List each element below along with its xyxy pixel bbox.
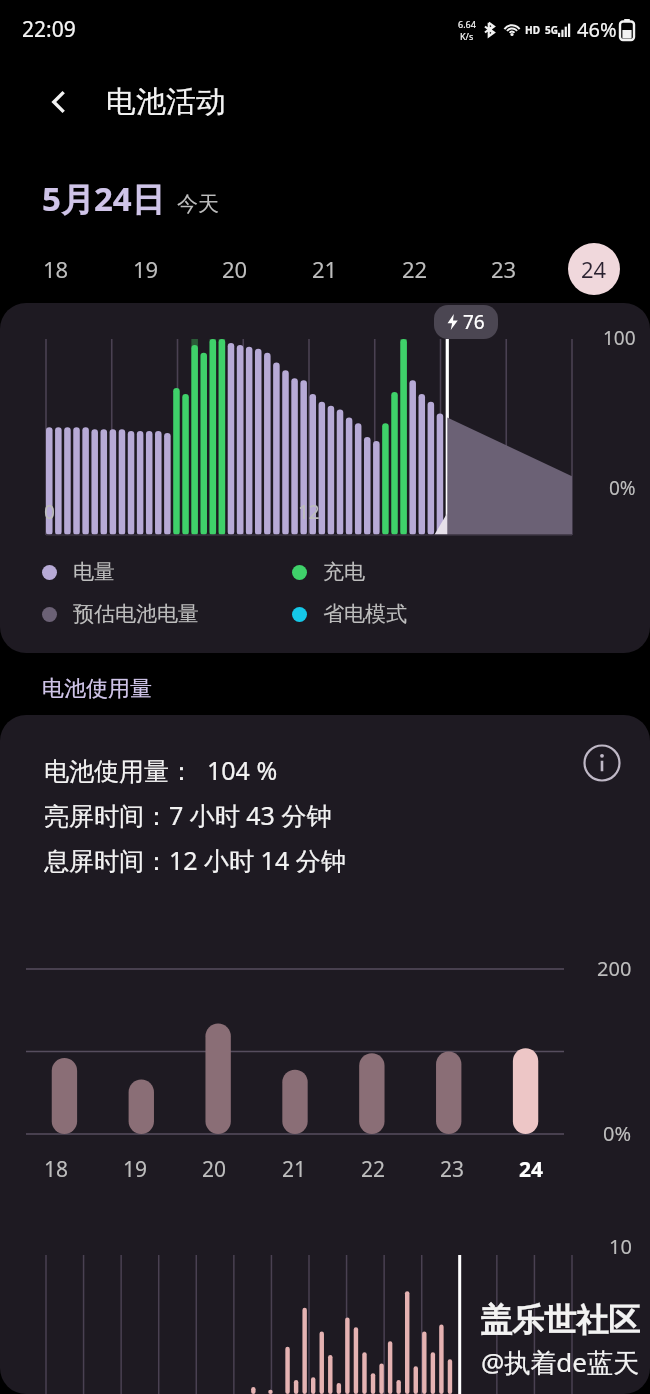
staticText: 24 <box>581 254 607 284</box>
staticText: 19 <box>123 1155 148 1184</box>
staticText: 20 <box>202 1155 227 1184</box>
staticText: 21 <box>312 254 338 284</box>
staticText: 电池活动 <box>106 83 226 121</box>
staticText: 今天 <box>177 191 219 217</box>
button[interactable]: Back <box>36 79 82 125</box>
staticText: 息屏时间：12 小时 14 分钟 <box>44 843 346 877</box>
button[interactable]: 18 <box>30 243 82 295</box>
staticText: K/s <box>460 30 474 42</box>
button[interactable]: 19 <box>120 243 172 295</box>
staticText: 23 <box>440 1155 465 1184</box>
button[interactable]: 22 <box>389 243 441 295</box>
button[interactable]: 电池使用量： 104 % <box>0 715 650 1394</box>
staticText: 0% <box>603 1120 632 1147</box>
staticText: 6.64 <box>458 18 476 30</box>
button[interactable]: 20 <box>209 243 261 295</box>
staticText: HD <box>525 23 540 37</box>
staticText: 18 <box>43 254 69 284</box>
staticText: 0% <box>609 475 636 501</box>
staticText: 亮屏时间：7 小时 43 分钟 <box>44 798 332 832</box>
staticText: 5G <box>545 23 558 37</box>
button[interactable]: 24 <box>568 243 620 295</box>
staticText: 18 <box>44 1155 69 1184</box>
staticText: 10 <box>609 1233 632 1260</box>
staticText: 电池使用量 <box>42 675 152 703</box>
button[interactable]: Info <box>578 739 626 787</box>
button[interactable]: 21 <box>299 243 351 295</box>
staticText: 24 <box>519 1155 544 1184</box>
staticText: 19 <box>133 254 159 284</box>
staticText: 23 <box>491 254 517 284</box>
staticText: 省电模式 <box>323 601 407 627</box>
button[interactable]: 100 <box>0 303 650 653</box>
staticText: 200 <box>597 955 632 982</box>
staticText: 充电 <box>323 559 365 585</box>
staticText: 46% <box>577 16 617 43</box>
staticText: 预估电池电量 <box>73 601 199 627</box>
staticText: 22 <box>361 1155 386 1184</box>
staticText: 21 <box>282 1155 307 1184</box>
button[interactable]: 23 <box>478 243 530 295</box>
staticText: 12 <box>298 499 320 525</box>
staticText: 76 <box>463 309 485 335</box>
staticText: 电量 <box>73 559 115 585</box>
staticText: 22 <box>402 254 428 284</box>
staticText: 22:09 <box>22 15 76 44</box>
staticText: @执着de蓝天 <box>481 1344 640 1380</box>
staticText: 0 <box>44 499 55 525</box>
staticText: 盖乐世社区 <box>480 1300 640 1340</box>
staticText: 20 <box>222 254 248 284</box>
staticText: 电池使用量： 104 % <box>44 753 278 787</box>
staticText: 5月24日 <box>42 176 165 221</box>
staticText: 100 <box>603 325 636 351</box>
